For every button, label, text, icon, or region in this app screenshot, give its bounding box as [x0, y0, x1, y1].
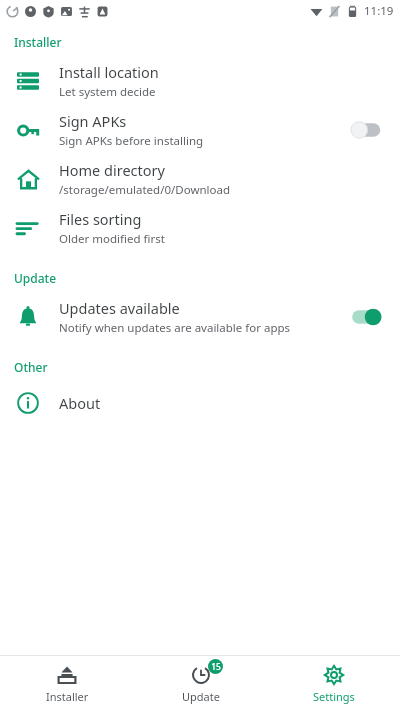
button[interactable]: Settings: [267, 656, 400, 711]
staticText: Update: [14, 270, 57, 286]
staticText: Files sorting: [59, 209, 142, 229]
staticText: /storage/emulated/0/Download: [59, 182, 231, 198]
button[interactable]: [350, 306, 386, 328]
staticText: 15: [211, 661, 221, 673]
button[interactable]: Sign APKs: [0, 105, 400, 154]
other: Installer: [57, 665, 77, 685]
button[interactable]: Installer: [0, 656, 134, 711]
staticText: Installer: [46, 689, 89, 704]
staticText: Older modified first: [59, 231, 165, 247]
button[interactable]: Install location: [0, 56, 400, 105]
staticText: Update: [182, 689, 220, 704]
staticText: Settings: [313, 689, 355, 704]
staticText: Other: [14, 359, 48, 375]
button[interactable]: Files sorting: [0, 203, 400, 252]
button[interactable]: [350, 119, 386, 141]
staticText: Home directory: [59, 160, 165, 180]
staticText: Let system decide: [59, 84, 156, 100]
staticText: Installer: [14, 34, 62, 50]
staticText: Install location: [59, 62, 159, 82]
staticText: Sign APKs: [59, 111, 127, 131]
staticText: Sign APKs before installing: [59, 133, 204, 149]
staticText: About: [59, 393, 101, 413]
staticText: Updates available: [59, 298, 180, 318]
staticText: 11:19: [364, 3, 394, 19]
button[interactable]: Updates available: [0, 292, 400, 341]
button[interactable]: About: [0, 381, 400, 425]
staticText: Notify when updates are available for ap…: [59, 320, 291, 336]
other: Update: [191, 665, 211, 685]
other: Settings: [324, 665, 344, 685]
button[interactable]: Home directory: [0, 154, 400, 203]
button[interactable]: Update: [134, 656, 267, 711]
